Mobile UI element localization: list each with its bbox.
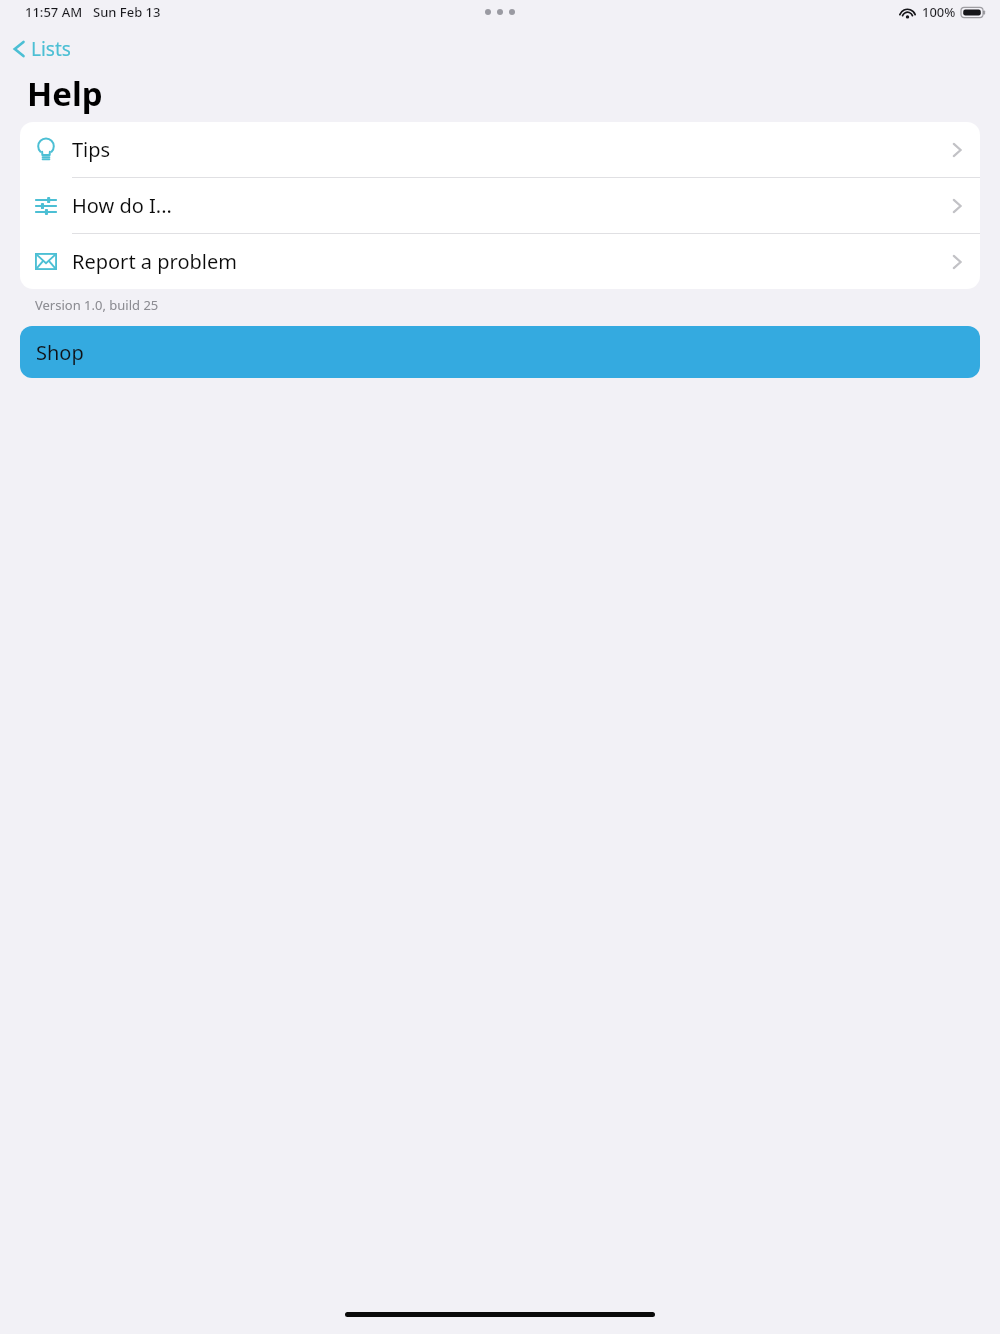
button[interactable]: Shop <box>20 326 980 378</box>
staticText: Report a problem <box>72 248 237 275</box>
button[interactable]: How do I... <box>20 178 980 234</box>
button[interactable]: Tips <box>20 122 980 178</box>
button[interactable]: Lists <box>8 34 75 64</box>
staticText: Shop <box>36 339 84 366</box>
staticText: How do I... <box>72 192 172 219</box>
staticText: Tips <box>72 136 111 163</box>
staticText: Lists <box>31 36 71 62</box>
staticText: Sun Feb 13 <box>93 3 161 21</box>
staticText: 11:57 AM <box>25 3 83 21</box>
staticText: Help <box>27 71 103 116</box>
staticText: Version 1.0, build 25 <box>35 296 159 314</box>
staticText: 100% <box>922 3 956 21</box>
button[interactable]: Report a problem <box>20 234 980 289</box>
